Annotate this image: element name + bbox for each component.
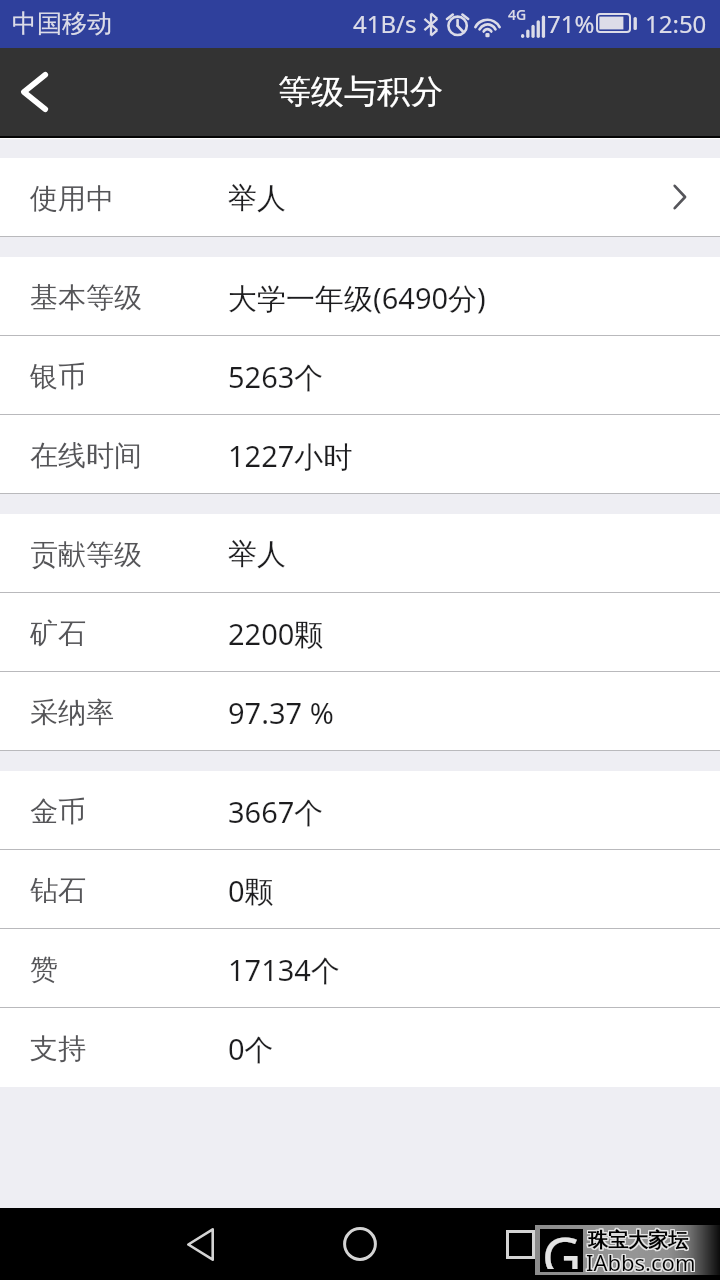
staticText: 珠宝大家坛 [588,1229,688,1254]
staticText: 0个 [228,1029,274,1069]
staticText: G [542,1219,582,1269]
staticText: 4G [508,5,527,24]
staticText: 珠宝大家坛 [589,1227,689,1252]
staticText: 珠宝大家坛 [587,1227,687,1252]
button[interactable]: 使用中 [0,158,720,237]
button[interactable]: 矿石 [0,593,720,672]
staticText: 使用中 [30,181,114,216]
staticText: 举人 [228,180,286,217]
button[interactable]: 金币 [0,771,720,850]
staticText: 12:50 [645,7,707,40]
staticText: 中国移动 [12,8,112,39]
button[interactable]: 基本等级 [0,257,720,336]
staticText: 珠宝大家坛 [589,1228,689,1253]
staticText: IAbbs.com [585,1246,695,1276]
staticText: 举人 [228,536,286,573]
staticText: 41B/s [353,7,417,40]
staticText: 矿石 [30,616,86,651]
button[interactable]: Home [300,1208,420,1280]
staticText: 97.37 % [228,693,334,732]
button[interactable]: 银币 [0,336,720,415]
staticText: 17134个 [228,950,340,990]
staticText: 0颗 [228,871,274,911]
staticText: 基本等级 [30,280,142,315]
staticText: IAbbs.com [586,1247,696,1277]
staticText: IAbbs.com [585,1248,695,1278]
staticText: 金币 [30,794,86,829]
staticText: 1227小时 [228,436,353,476]
staticText: 等级与积分 [278,71,443,113]
staticText: 采纳率 [30,695,114,730]
button[interactable]: 赞 [0,929,720,1008]
staticText: 在线时间 [30,438,142,473]
button[interactable]: Back [0,48,72,136]
staticText: 3667个 [228,792,324,832]
button[interactable]: Back [140,1208,260,1280]
staticText: IAbbs.com [585,1247,695,1277]
button[interactable]: 在线时间 [0,415,720,494]
staticText: 珠宝大家坛 [589,1229,689,1254]
button[interactable]: 支持 [0,1008,720,1087]
button[interactable]: 采纳率 [0,672,720,751]
staticText: 珠宝大家坛 [588,1228,688,1253]
staticText: 2200颗 [228,614,324,654]
staticText: IAbbs.com [587,1247,697,1277]
staticText: IAbbs.com [586,1246,696,1276]
staticText: 5263个 [228,357,324,397]
staticText: 大学一年级(6490分) [228,278,486,318]
button[interactable]: Recent apps [460,1208,580,1280]
staticText: 钻石 [30,873,86,908]
staticText: 珠宝大家坛 [588,1227,688,1252]
button[interactable]: 贡献等级 [0,514,720,593]
staticText: 珠宝大家坛 [587,1228,687,1253]
staticText: IAbbs.com [586,1248,696,1278]
staticText: 贡献等级 [30,537,142,572]
staticText: 珠宝大家坛 [587,1229,687,1254]
staticText: IAbbs.com [587,1246,697,1276]
staticText: IAbbs.com [587,1248,697,1278]
button[interactable]: 钻石 [0,850,720,929]
staticText: 支持 [30,1031,86,1066]
staticText: 银币 [30,359,86,394]
staticText: 71% [547,7,595,40]
staticText: 赞 [30,952,58,987]
